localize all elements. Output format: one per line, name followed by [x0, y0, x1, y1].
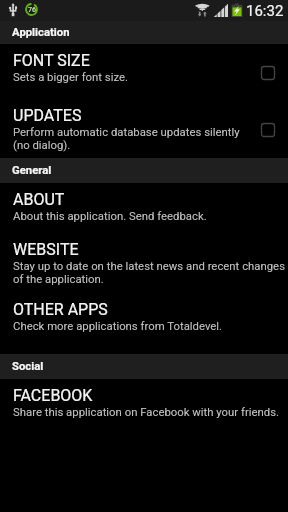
button[interactable]: OTHER APPS	[0, 293, 288, 354]
staticText: Share this application on Facebook with …	[13, 405, 280, 418]
staticText: FONT SIZE	[13, 51, 90, 70]
staticText: Social	[12, 360, 44, 373]
staticText: ABOUT	[13, 190, 65, 209]
staticText: UPDATES	[13, 106, 82, 125]
staticText: Application	[12, 26, 70, 39]
staticText: About this application. Send feedback.	[13, 209, 207, 222]
button[interactable]: WEBSITE	[0, 233, 288, 293]
staticText: Check more applications from Totaldevel.	[13, 319, 223, 332]
staticText: Stay up to date on the latest news and r…	[13, 259, 288, 285]
button[interactable]: UPDATES	[0, 99, 288, 158]
button[interactable]: Toggle FONT SIZE	[261, 66, 275, 80]
staticText: OTHER APPS	[13, 300, 108, 319]
staticText: FACEBOOK	[13, 386, 93, 405]
staticText: General	[12, 164, 52, 177]
button[interactable]: ABOUT	[0, 183, 288, 233]
staticText: Sets a bigger font size.	[13, 70, 129, 83]
staticText: 16:32	[246, 2, 284, 20]
staticText: Perform automatic database updates silen…	[13, 125, 248, 151]
button[interactable]: FONT SIZE	[0, 44, 288, 99]
button[interactable]: FACEBOOK	[0, 379, 288, 429]
staticText: 76	[28, 6, 36, 14]
button[interactable]: Toggle UPDATES	[261, 123, 275, 137]
staticText: WEBSITE	[13, 240, 79, 259]
